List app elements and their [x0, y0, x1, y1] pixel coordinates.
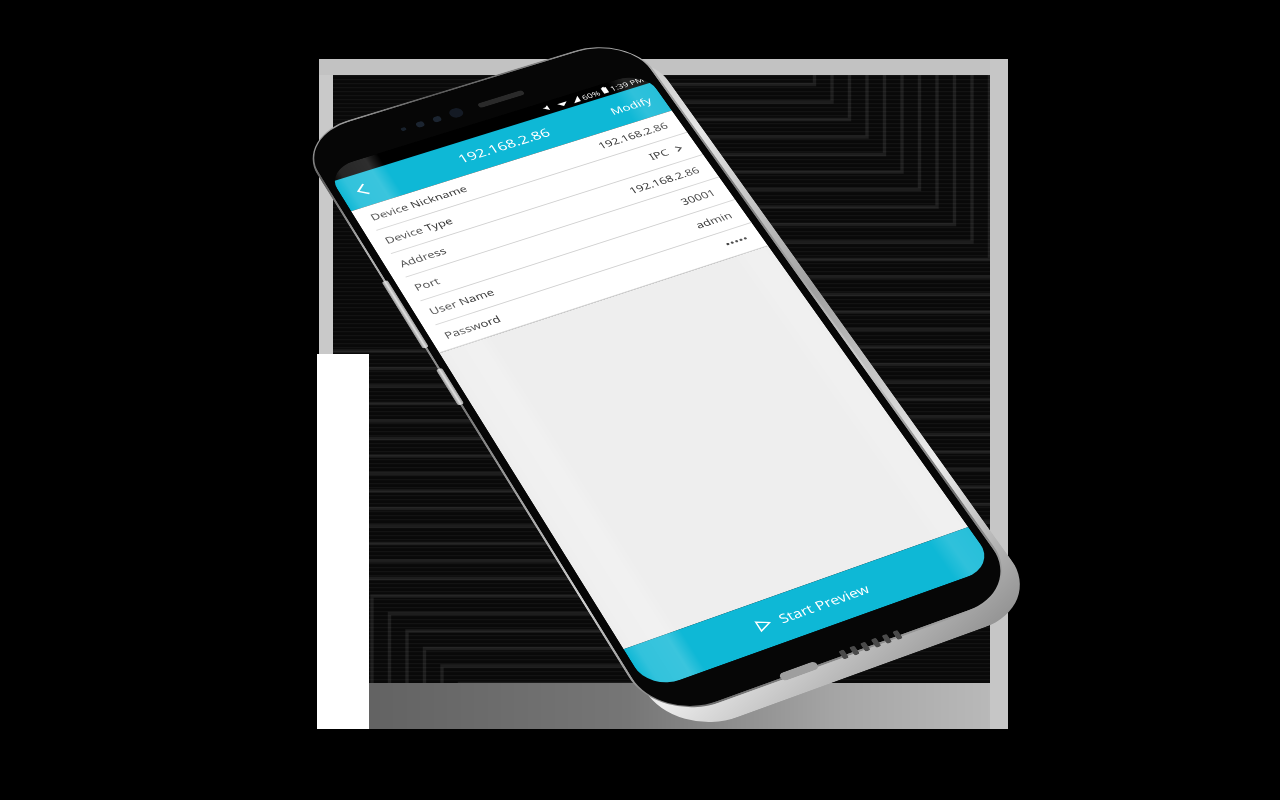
button[interactable]: Port [394, 177, 735, 305]
staticText: IPC [646, 146, 673, 163]
button[interactable]: Address [380, 155, 719, 281]
staticText: 60% [579, 88, 602, 101]
button[interactable]: Start Preview [623, 527, 996, 691]
staticText: Port [411, 275, 443, 294]
staticText: admin [693, 209, 735, 232]
staticText: 30001 [678, 186, 719, 208]
staticText: 192.168.2.86 [595, 119, 671, 152]
button[interactable]: Device Nickname [351, 111, 687, 234]
staticText: Address [397, 244, 450, 270]
button[interactable]: User Name [409, 200, 752, 329]
staticText: User Name [426, 286, 498, 318]
button[interactable]: Back [332, 169, 393, 211]
button[interactable]: Password [424, 223, 768, 353]
staticText: Device Nickname [368, 183, 470, 224]
button[interactable]: Device Type [365, 132, 703, 257]
staticText: Modify [607, 94, 655, 118]
staticText: 1:39 PM [607, 75, 646, 93]
staticText: Password [441, 313, 504, 342]
button[interactable]: Modify [590, 82, 672, 130]
staticText: Start Preview [775, 580, 874, 627]
staticText: Device Type [382, 215, 456, 247]
staticText: ••••• [722, 232, 752, 251]
staticText: 192.168.2.86 [626, 164, 703, 197]
staticText: 192.168.2.86 [454, 124, 554, 167]
